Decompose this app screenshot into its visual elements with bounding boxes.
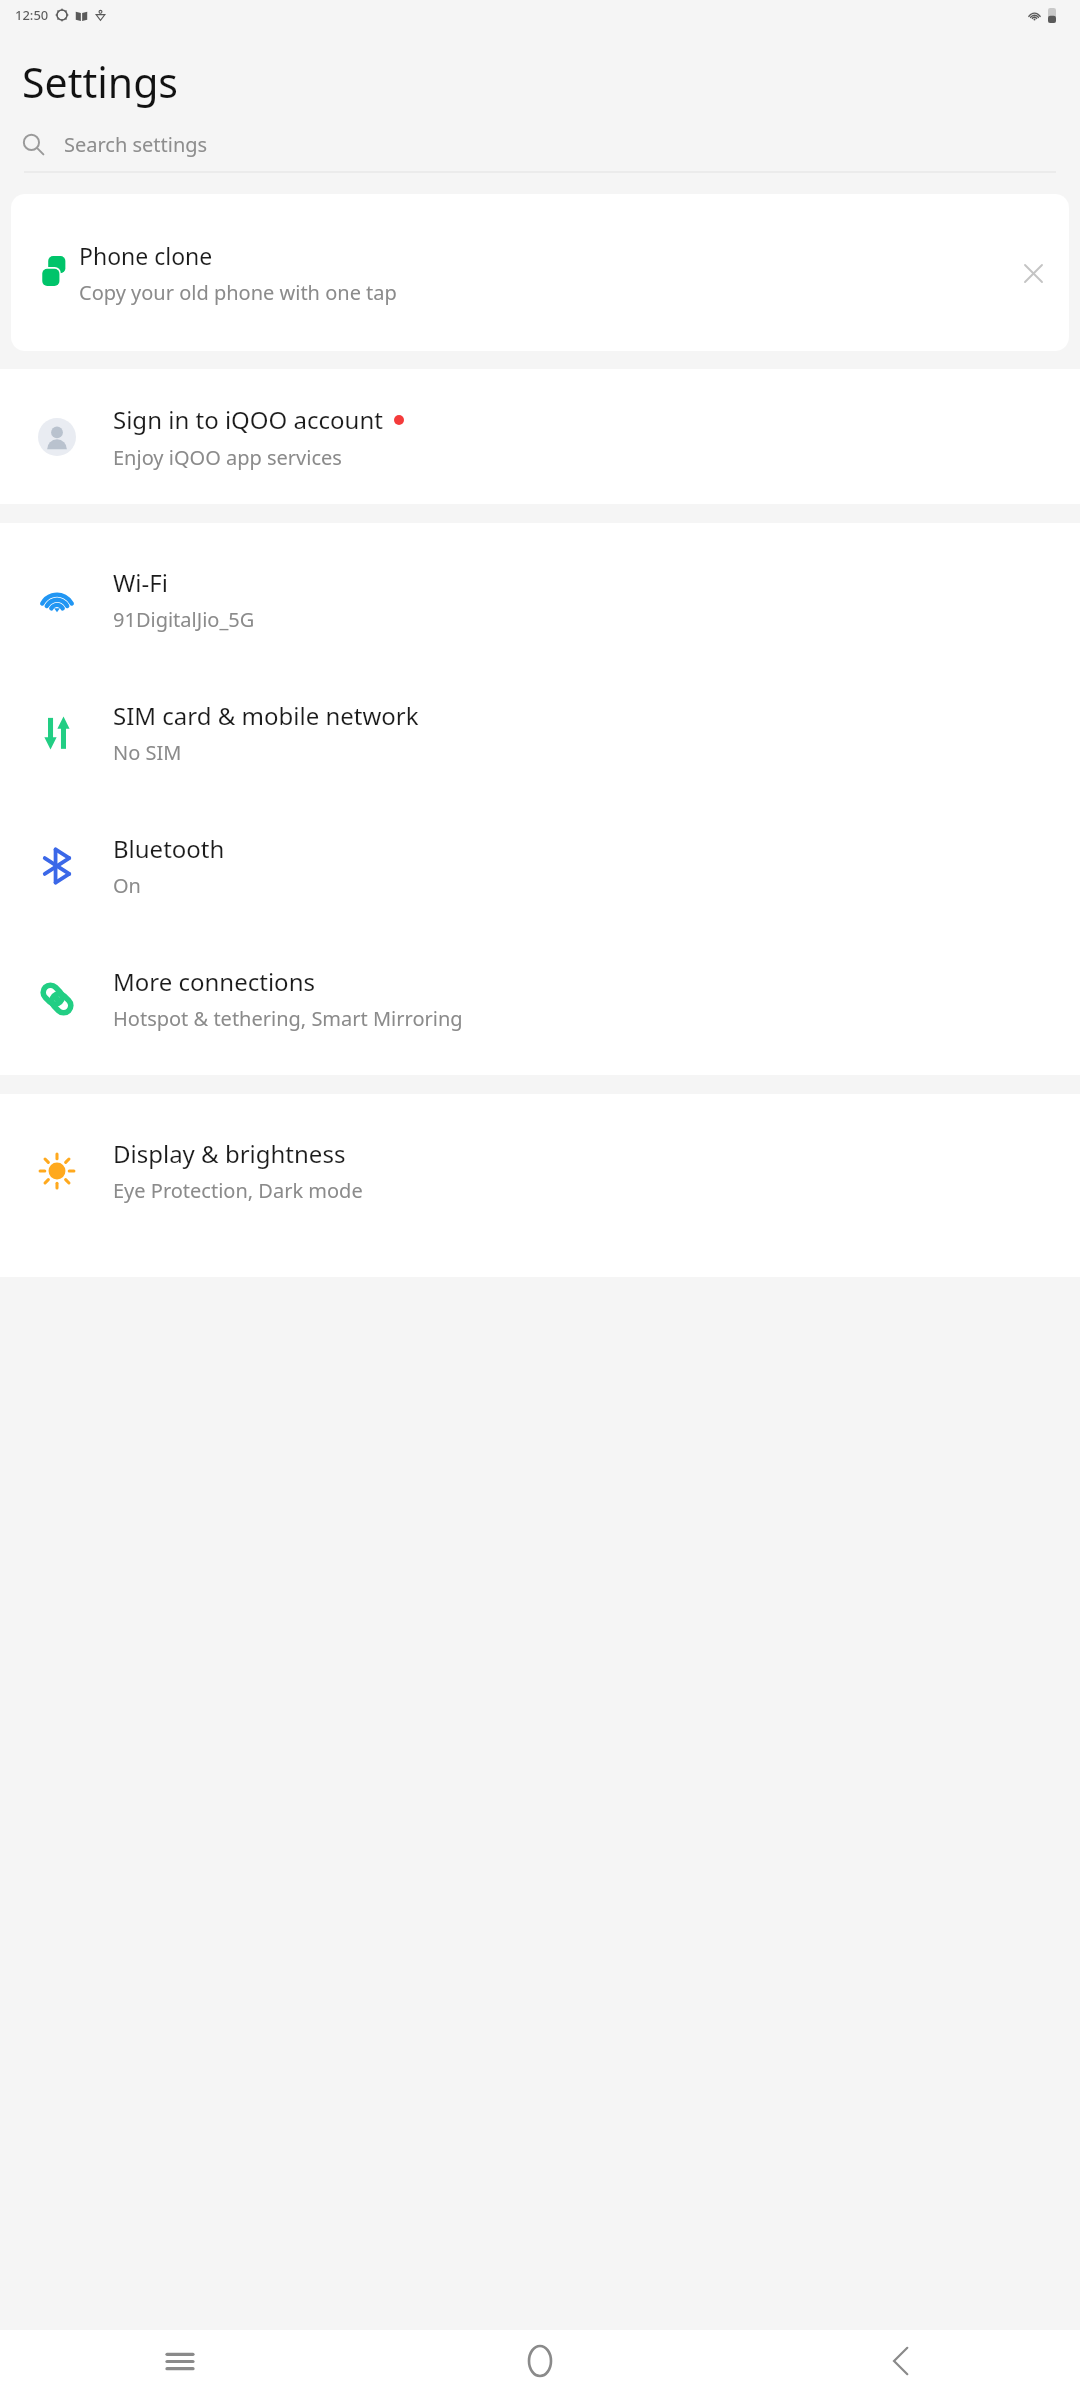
button[interactable]: Search settings xyxy=(0,118,1080,171)
staticText: Copy your old phone with one tap xyxy=(79,279,397,306)
button[interactable]: Bluetooth xyxy=(0,799,1080,932)
staticText: Phone clone xyxy=(79,240,213,271)
button[interactable]: SIM card & mobile network xyxy=(0,666,1080,799)
staticText: Search settings xyxy=(64,131,208,158)
button[interactable]: Wi-Fi xyxy=(0,533,1080,666)
staticText: Settings xyxy=(22,54,179,110)
staticText: 12:50 xyxy=(15,6,49,24)
button[interactable]: Dismiss xyxy=(1005,245,1061,301)
staticText: Display & brightness xyxy=(113,1137,346,1170)
staticText: Hotspot & tethering, Smart Mirroring xyxy=(113,1005,463,1032)
button[interactable]: Home xyxy=(360,2330,720,2392)
staticText: SIM card & mobile network xyxy=(113,699,419,732)
button[interactable]: Phone clone xyxy=(11,194,1069,351)
button[interactable]: Sign in to iQOO account xyxy=(0,369,1080,504)
staticText: More connections xyxy=(113,965,315,998)
staticText: No SIM xyxy=(113,739,182,766)
button[interactable]: Recent apps xyxy=(0,2330,360,2392)
button[interactable]: Display & brightness xyxy=(0,1104,1080,1237)
staticText: Wi-Fi xyxy=(113,566,168,599)
button[interactable]: More connections xyxy=(0,932,1080,1065)
staticText: On xyxy=(113,872,141,899)
staticText: Enjoy iQOO app services xyxy=(113,444,342,471)
staticText: Eye Protection, Dark mode xyxy=(113,1177,363,1204)
button[interactable]: Back xyxy=(720,2330,1080,2392)
staticText: Bluetooth xyxy=(113,832,225,865)
staticText: 91DigitalJio_5G xyxy=(113,606,255,633)
staticText: Sign in to iQOO account xyxy=(113,403,383,436)
